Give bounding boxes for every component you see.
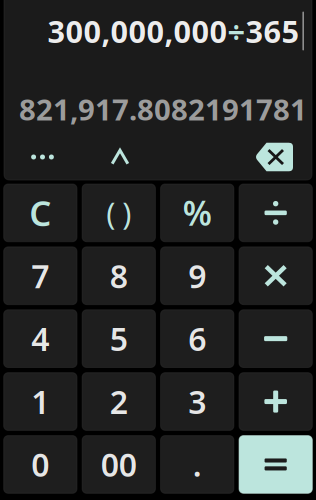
staticText: 365 — [245, 11, 299, 51]
button[interactable]: Equals — [239, 436, 312, 493]
button[interactable]: 8 — [82, 247, 155, 305]
button[interactable]: . — [161, 436, 234, 493]
button[interactable]: Divide — [239, 184, 312, 242]
staticText: 1 — [31, 380, 49, 423]
button[interactable]: 6 — [161, 310, 234, 367]
staticText: % — [183, 191, 212, 235]
staticText: ) — [122, 192, 131, 233]
button[interactable]: 7 — [4, 247, 77, 305]
staticText: ÷ — [227, 11, 245, 51]
staticText: 4 — [31, 317, 49, 360]
staticText: 9 — [188, 254, 206, 297]
button[interactable]: 5 — [82, 310, 155, 367]
staticText: 0 — [31, 443, 49, 486]
button[interactable]: Multiply — [239, 247, 312, 305]
staticText: ( — [106, 192, 115, 233]
staticText: 821,917.8082191781 — [19, 89, 307, 128]
button[interactable]: More options — [14, 141, 70, 173]
button[interactable]: 0 — [4, 436, 77, 493]
staticText: 2 — [110, 380, 128, 423]
button[interactable]: C — [4, 184, 77, 242]
button[interactable]: 00 — [82, 436, 155, 493]
staticText: C — [29, 190, 51, 236]
button[interactable]: Parentheses — [82, 184, 155, 242]
button[interactable]: Collapse keypad — [92, 141, 148, 173]
staticText: . — [193, 443, 202, 486]
button[interactable]: Minus — [239, 310, 312, 367]
staticText: 7 — [31, 254, 49, 297]
button[interactable]: 9 — [161, 247, 234, 305]
button[interactable]: Delete — [246, 141, 302, 173]
staticText: 6 — [188, 317, 206, 360]
staticText: 300,000,000 — [47, 11, 227, 51]
button[interactable]: 4 — [4, 310, 77, 367]
staticText: 5 — [110, 317, 128, 360]
button[interactable]: Plus — [239, 373, 312, 430]
button[interactable]: 3 — [161, 373, 234, 430]
button[interactable]: % — [161, 184, 234, 242]
staticText: 00 — [101, 443, 137, 486]
staticText: 8 — [110, 254, 128, 297]
button[interactable]: 1 — [4, 373, 77, 430]
button[interactable]: 2 — [82, 373, 155, 430]
staticText: 3 — [188, 380, 206, 423]
